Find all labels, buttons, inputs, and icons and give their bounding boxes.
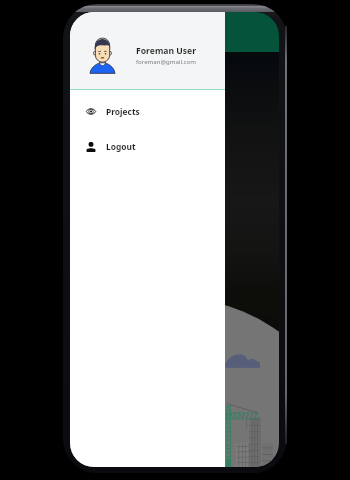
button[interactable]: Projects: [70, 94, 225, 129]
button[interactable]: Foreman User: [70, 12, 225, 90]
button[interactable]: Logout: [70, 129, 225, 164]
staticText: foreman@gmail.com: [136, 57, 196, 65]
staticText: Projects: [106, 106, 140, 117]
staticText: Logout: [106, 141, 136, 152]
staticText: Foreman User: [136, 45, 197, 57]
